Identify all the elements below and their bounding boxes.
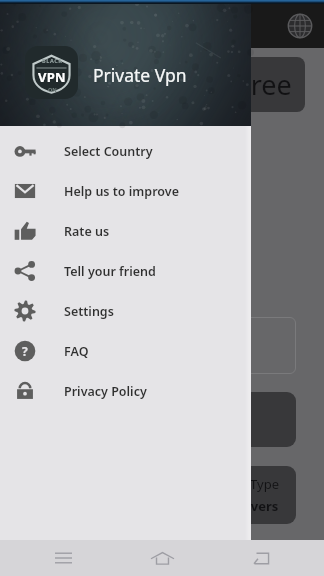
button[interactable]: Recent apps <box>43 540 84 576</box>
button[interactable]: Help us to improve <box>0 171 251 211</box>
button[interactable]: Back <box>240 540 281 576</box>
staticText: Tell your friend <box>64 263 156 280</box>
button[interactable]: Settings <box>0 291 251 331</box>
staticText: Connection Type <box>177 475 279 493</box>
staticText: Help us to improve <box>64 183 179 200</box>
button[interactable]: Privacy Policy <box>0 371 251 411</box>
staticText: BLACK <box>42 57 63 64</box>
button[interactable] <box>28 392 296 447</box>
button[interactable]: Tell your friend <box>0 251 251 291</box>
staticText: ? <box>22 343 28 359</box>
staticText: FAQ <box>64 343 89 360</box>
button[interactable]: Rate us <box>0 211 251 251</box>
staticText: VPN <box>38 68 66 86</box>
button[interactable]: Connection Type <box>28 466 296 524</box>
staticText: Select Country <box>64 143 153 160</box>
button[interactable]: Connect Free <box>19 57 305 112</box>
staticText: Connect Free <box>125 66 292 103</box>
button[interactable]: Select Country <box>0 131 251 171</box>
button[interactable]: Select server location <box>287 13 313 39</box>
staticText: Private Vpn <box>93 63 187 87</box>
button[interactable]: Home <box>142 540 183 576</box>
staticText: ON <box>48 86 57 93</box>
button[interactable] <box>28 317 296 374</box>
staticText: Rate us <box>64 223 110 240</box>
staticText: Privacy Policy <box>64 383 147 400</box>
staticText: Settings <box>64 303 114 320</box>
button[interactable]: ? <box>0 331 251 371</box>
staticText: Servers <box>230 497 279 515</box>
